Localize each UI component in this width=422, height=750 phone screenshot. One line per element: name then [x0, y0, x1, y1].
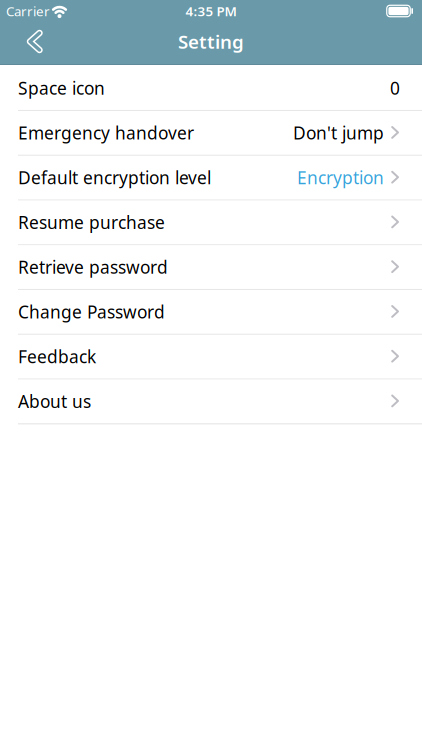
staticText: Change Password [18, 300, 165, 323]
button[interactable]: Change Password [0, 290, 422, 335]
staticText: About us [18, 390, 91, 413]
button[interactable]: Emergency handover [0, 111, 422, 156]
staticText: Carrier [6, 2, 50, 20]
staticText: Default encryption level [18, 166, 211, 189]
staticText: Encryption [297, 166, 384, 189]
staticText: 4:35 PM [185, 2, 236, 20]
staticText: Feedback [18, 345, 96, 368]
staticText: Space icon [18, 77, 105, 100]
staticText: Resume purchase [18, 211, 165, 234]
button[interactable]: Resume purchase [0, 201, 422, 245]
staticText: Retrieve password [18, 256, 168, 279]
button[interactable]: Default encryption level [0, 156, 422, 201]
staticText: 0 [390, 77, 400, 100]
button[interactable]: Retrieve password [0, 245, 422, 290]
staticText: Don't jump [293, 121, 384, 144]
button[interactable]: Back [0, 22, 44, 61]
button[interactable]: Space icon [0, 66, 422, 111]
button[interactable]: About us [0, 380, 422, 424]
staticText: Setting [178, 29, 244, 54]
button[interactable]: Feedback [0, 335, 422, 380]
staticText: Emergency handover [18, 121, 194, 144]
